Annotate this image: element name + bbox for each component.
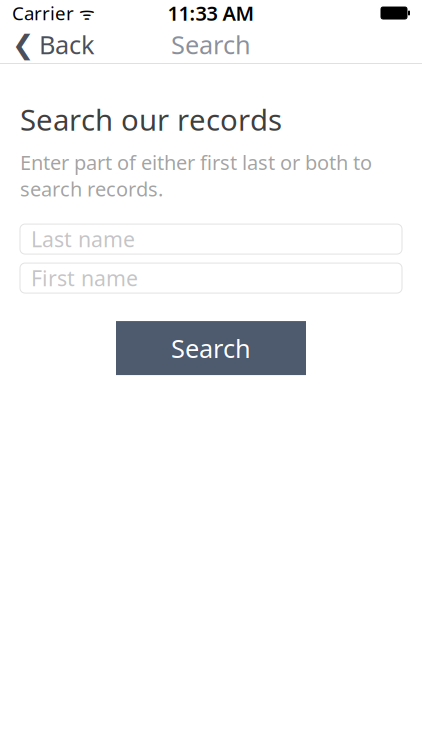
staticText: Carrier [12,1,74,25]
staticText: First name [31,264,138,292]
staticText: Enter part of either first last or both … [20,149,372,202]
staticText: 11:33 AM [167,0,254,26]
staticText: Back [39,28,95,61]
staticText: ᯤ [74,1,95,24]
staticText: Search our records [20,100,282,139]
staticText: Last name [31,225,135,253]
staticText: Search [171,331,251,365]
button[interactable]: ❮ [0,23,107,66]
staticText: Search [171,28,251,61]
staticText: ❮ [12,29,34,60]
button[interactable]: Search [116,321,306,375]
